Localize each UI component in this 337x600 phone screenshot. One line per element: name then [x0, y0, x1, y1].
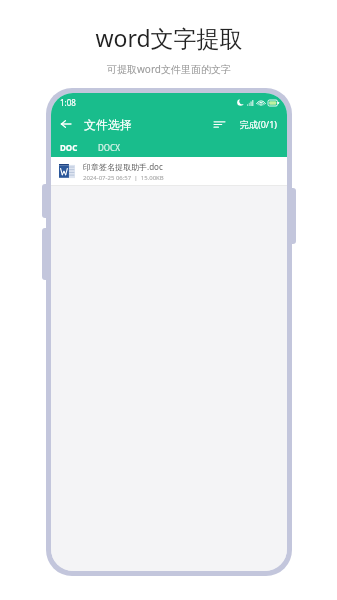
staticText: 文件选择 [84, 117, 132, 132]
staticText: 印章签名提取助手.doc [83, 161, 163, 172]
staticText: DOC [60, 142, 78, 153]
staticText: 可提取word文件里面的文字 [107, 62, 231, 76]
button[interactable]: Back [56, 114, 76, 134]
staticText: 1:08 [60, 97, 76, 108]
staticText: DOCX [98, 142, 120, 153]
button[interactable]: DOCX [84, 142, 126, 153]
staticText: 2024-07-25 06:57 | 15.00KB [83, 174, 164, 182]
button[interactable]: 完成(0/1) [238, 115, 280, 133]
button[interactable]: 印章签名提取助手.doc [51, 157, 287, 185]
staticText: word文字提取 [95, 22, 243, 53]
button[interactable]: DOC [51, 142, 84, 153]
staticText: 完成(0/1) [240, 118, 278, 130]
button[interactable]: Sort [210, 115, 228, 133]
